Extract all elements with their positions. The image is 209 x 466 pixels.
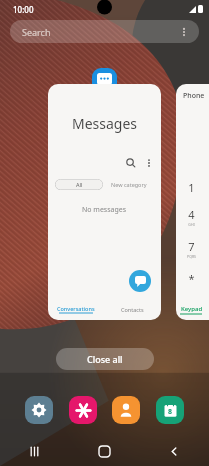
other: Messages app icon — [92, 68, 117, 93]
button[interactable]: Contacts — [112, 396, 140, 424]
button[interactable]: New conversation — [129, 270, 151, 292]
staticText: 7 — [188, 239, 195, 254]
button[interactable]: New category — [111, 181, 147, 188]
staticText: Close all — [87, 353, 123, 365]
button[interactable]: Recent apps — [0, 436, 69, 466]
button[interactable]: Conversations — [48, 298, 104, 320]
button[interactable]: Close all — [56, 348, 154, 370]
staticText: 8 — [168, 407, 173, 417]
button[interactable]: Messages — [48, 84, 161, 320]
staticText: 10:00 — [13, 4, 34, 15]
staticText: 1 — [188, 180, 195, 195]
staticText: Contacts — [121, 306, 144, 313]
button[interactable]: Contacts — [104, 298, 161, 320]
button[interactable]: Search — [10, 20, 199, 43]
button[interactable]: All — [55, 179, 103, 190]
button[interactable]: Back — [139, 436, 209, 466]
staticText: Conversations — [57, 305, 95, 312]
staticText: Phone — [183, 91, 205, 101]
staticText: 4 — [188, 207, 195, 222]
staticText: * — [188, 271, 195, 286]
staticText: Search — [22, 26, 51, 38]
staticText: All — [76, 181, 83, 188]
staticText: No messages — [82, 205, 127, 215]
staticText: Keypad — [181, 305, 203, 313]
staticText: PQRS — [187, 254, 196, 259]
button[interactable]: Galaxy Store — [69, 396, 97, 424]
staticText: Messages — [72, 114, 138, 133]
button[interactable]: Search messages — [125, 157, 137, 169]
button[interactable]: More options — [177, 25, 191, 39]
button[interactable]: Home — [69, 436, 139, 466]
button[interactable]: Calendar — [156, 396, 184, 424]
staticText: New category — [111, 181, 147, 188]
button[interactable]: Phone — [176, 84, 209, 320]
staticText: GHI — [188, 222, 195, 227]
button[interactable]: More options — [143, 157, 155, 169]
button[interactable]: Settings — [25, 396, 53, 424]
